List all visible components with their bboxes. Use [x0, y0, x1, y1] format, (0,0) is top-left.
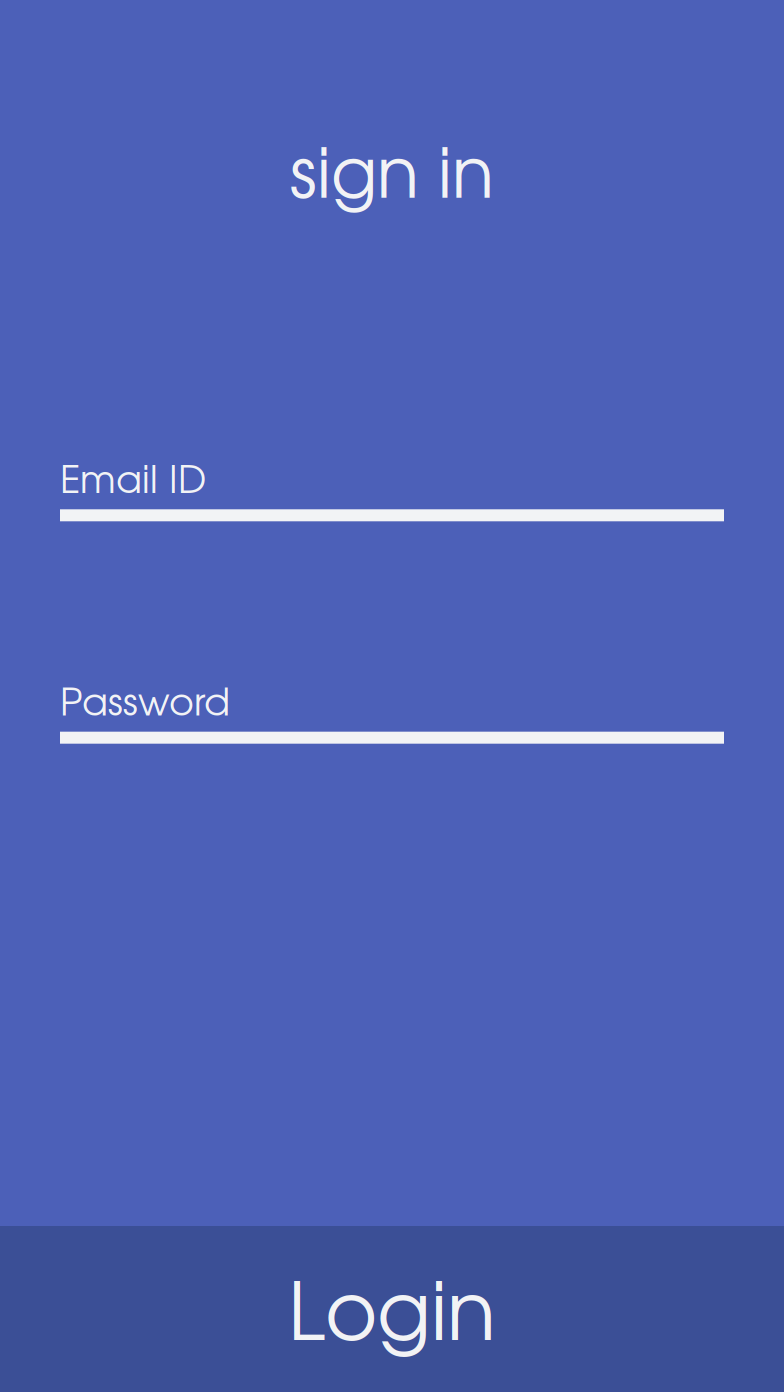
button[interactable]: Email ID: [0, 465, 784, 521]
staticText: Email ID: [60, 465, 206, 500]
button[interactable]: Password: [0, 687, 784, 744]
button[interactable]: Login: [0, 1226, 784, 1392]
staticText: Login: [288, 1281, 496, 1355]
staticText: sign in: [290, 147, 494, 211]
staticText: Password: [60, 687, 230, 723]
